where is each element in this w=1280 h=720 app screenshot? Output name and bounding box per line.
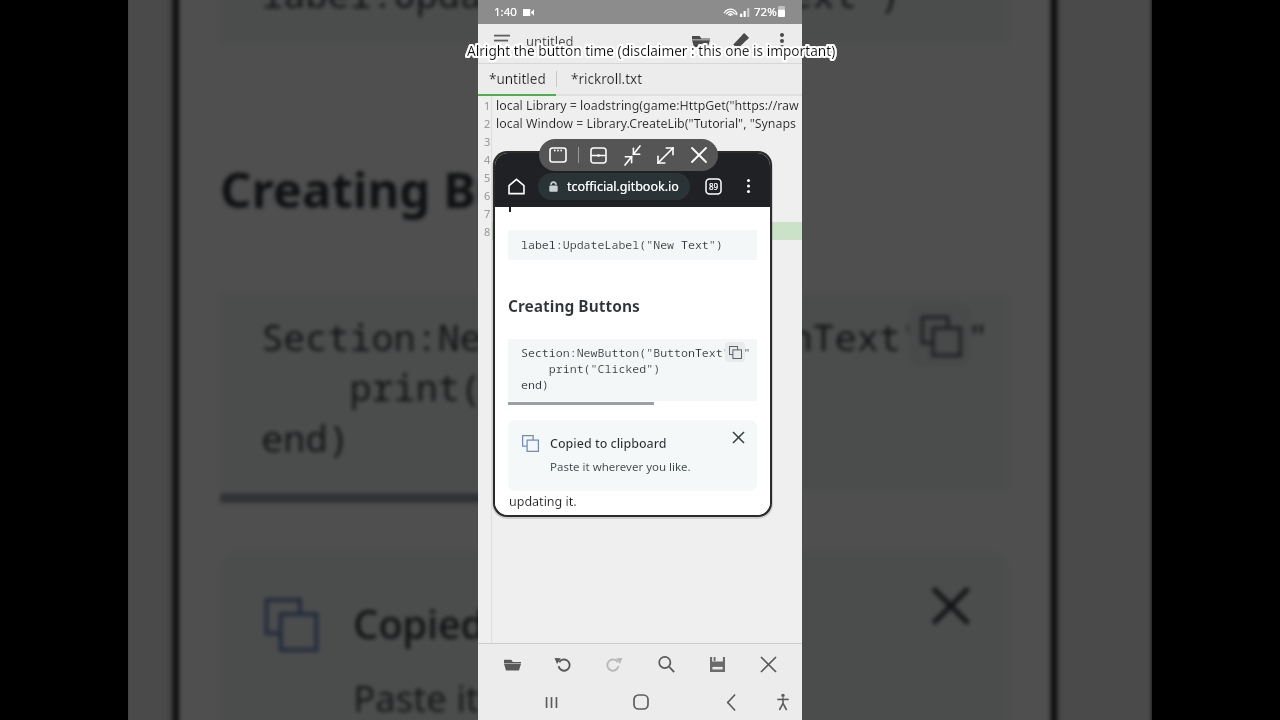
button[interactable]: Redo — [597, 647, 631, 681]
staticText: 72% — [754, 4, 777, 20]
staticText: 3 — [484, 134, 491, 149]
staticText: 1:40 — [494, 4, 517, 20]
staticText: Paste it wherever you like. — [353, 674, 800, 720]
staticText: Creating Buttons — [220, 154, 638, 221]
staticText: Alright the button time (disclaimer : th… — [467, 41, 836, 60]
button[interactable]: More options — [767, 26, 796, 55]
staticText: Copied to clipboard — [353, 598, 724, 652]
staticText: tcofficial.gitbook.io — [567, 178, 679, 195]
button[interactable]: Accessibility — [767, 686, 799, 718]
staticText: 7 — [484, 206, 491, 221]
button[interactable]: Close — [751, 647, 785, 681]
staticText: Copied to clipboard — [550, 435, 667, 452]
button[interactable]: Edit — [726, 26, 755, 55]
button[interactable]: Home — [503, 173, 529, 199]
staticText: Alright the button time (disclaimer : th… — [467, 41, 836, 60]
button[interactable]: Copy code — [908, 303, 971, 366]
staticText: Paste it wherever you like. — [550, 459, 691, 475]
button[interactable]: Dismiss — [727, 426, 749, 448]
button[interactable]: Tabs — [701, 174, 725, 198]
staticText: 4 — [484, 152, 491, 167]
button[interactable]: Minimize — [618, 141, 646, 169]
button[interactable]: Window mode — [544, 141, 572, 169]
button[interactable]: Open folder — [686, 26, 715, 55]
button[interactable]: Search — [649, 647, 683, 681]
staticText: 89 — [709, 181, 719, 192]
button[interactable]: Split screen — [584, 141, 612, 169]
button[interactable]: Copy code — [725, 342, 745, 362]
staticText: label:UpdateLabel("New Text") — [521, 237, 723, 253]
button[interactable]: Maximize — [651, 141, 679, 169]
staticText: 5 — [484, 170, 491, 185]
staticText: end) — [521, 377, 549, 393]
staticText: label:UpdateLabel("New Text") — [261, 0, 902, 21]
staticText: updating it. — [509, 493, 577, 510]
staticText: 2 — [484, 116, 491, 131]
staticText: untitled — [526, 32, 574, 50]
button[interactable]: Menu — [490, 26, 514, 50]
button[interactable]: Back — [715, 686, 747, 718]
staticText: end) — [261, 414, 350, 465]
staticText: local Window = Library.CreateLib("Tutori… — [496, 115, 797, 132]
button[interactable]: Save — [700, 647, 734, 681]
button[interactable]: *untitled — [478, 64, 556, 94]
staticText: 1 — [484, 98, 491, 113]
button[interactable]: Undo — [546, 647, 580, 681]
staticText: *rickroll.txt — [571, 70, 643, 88]
button[interactable]: Home — [625, 686, 657, 718]
staticText: 8 — [484, 224, 491, 239]
staticText: print("Clicked") — [521, 361, 661, 377]
staticText: Creating Buttons — [508, 295, 640, 316]
staticText: print("Clicked") — [261, 363, 705, 414]
button[interactable]: More options — [736, 174, 760, 198]
staticText: *untitled — [489, 70, 546, 88]
staticText: Section:NewButton("ButtonText", " — [261, 313, 990, 363]
staticText: Section:NewButton("ButtonText", " — [521, 345, 751, 361]
button[interactable]: tcofficial.gitbook.io — [538, 173, 690, 200]
button[interactable]: Recent apps — [535, 686, 567, 718]
button[interactable]: Dismiss — [914, 569, 984, 639]
staticText: local Library = loadstring(game:HttpGet(… — [496, 97, 799, 114]
button[interactable]: Open — [495, 647, 529, 681]
staticText: 6 — [484, 188, 491, 203]
button[interactable]: *rickroll.txt — [557, 64, 657, 94]
button[interactable]: Close — [685, 141, 713, 169]
